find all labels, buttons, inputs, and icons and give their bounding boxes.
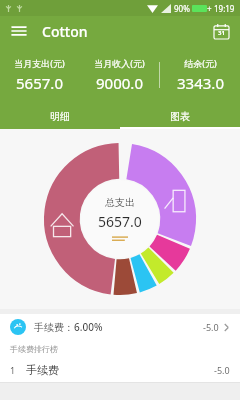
staticText: 结余(元) xyxy=(184,57,217,69)
staticText: 5657.0 xyxy=(16,73,63,93)
staticText: Cotton xyxy=(42,22,88,41)
staticText: 31 xyxy=(218,29,225,37)
staticText: -5.0 xyxy=(203,321,219,333)
staticText: 90% xyxy=(174,3,190,14)
staticText: 9000.0 xyxy=(96,73,143,93)
button[interactable]: Menu xyxy=(8,20,30,42)
staticText: 手续费 xyxy=(26,363,59,377)
button[interactable]: 明细 xyxy=(0,104,120,129)
staticText: 手续费：6.00% xyxy=(34,320,103,334)
staticText: 手续费排行榜 xyxy=(10,344,58,354)
staticText: 明细 xyxy=(50,110,70,123)
staticText: 1 xyxy=(10,364,16,376)
staticText: 图表 xyxy=(170,110,190,123)
button[interactable]: 1 xyxy=(0,358,240,382)
staticText: 3343.0 xyxy=(177,73,224,93)
staticText: 当月支出(元) xyxy=(14,57,65,69)
button[interactable]: 图表 xyxy=(120,104,240,129)
staticText: 总支出 xyxy=(105,196,135,209)
staticText: 19:19 xyxy=(214,3,235,14)
button[interactable]: Calendar xyxy=(210,20,232,42)
button[interactable]: 手续费：6.00% xyxy=(0,314,240,340)
staticText: -5.0 xyxy=(214,364,230,376)
staticText: + xyxy=(207,3,212,14)
staticText: 当月收入(元) xyxy=(94,57,145,69)
staticText: 5657.0 xyxy=(98,212,142,231)
